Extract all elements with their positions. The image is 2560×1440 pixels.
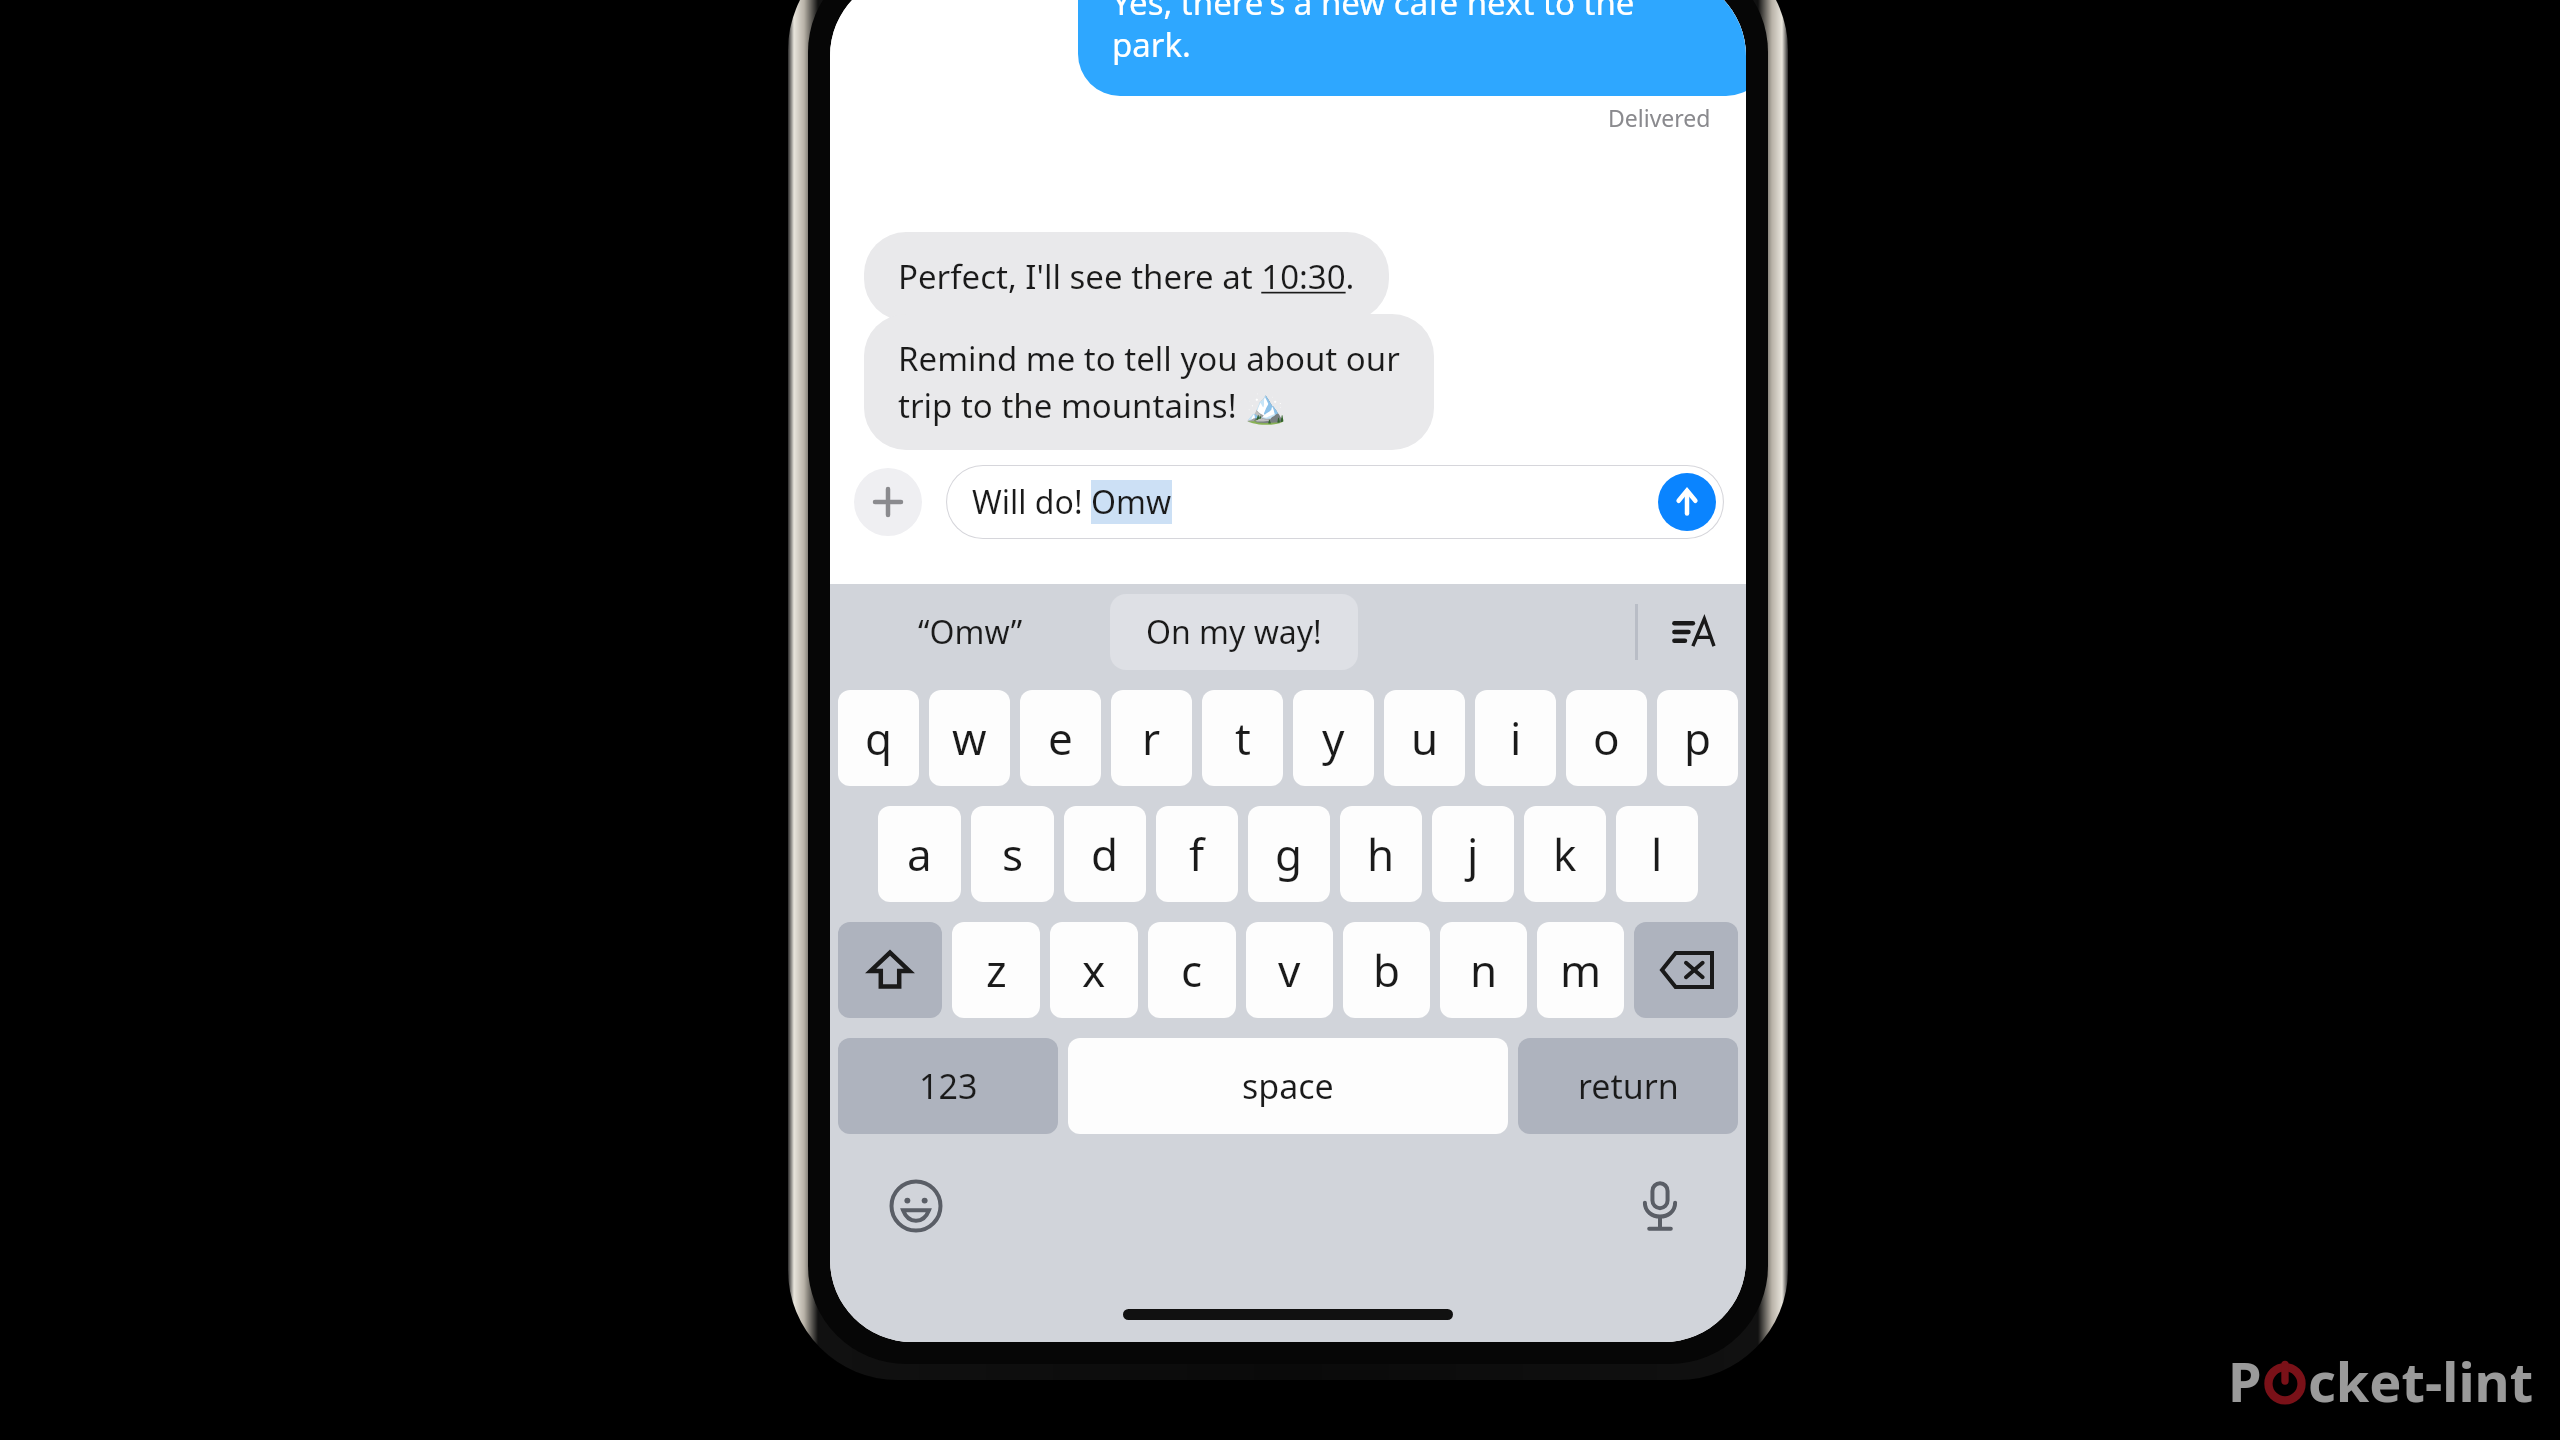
staticText: d (1091, 824, 1119, 884)
button[interactable]: Shift (838, 922, 942, 1018)
button[interactable]: g (1248, 806, 1330, 902)
button[interactable]: q (838, 690, 919, 786)
staticText: p (1684, 708, 1712, 768)
button[interactable]: j (1432, 806, 1514, 902)
button[interactable]: Yes, there's a new café next to the park… (1078, 0, 1746, 96)
button[interactable]: Backspace (1634, 922, 1738, 1018)
button[interactable]: return (1518, 1038, 1738, 1134)
button[interactable]: Add attachment (854, 468, 922, 536)
button[interactable]: Remind me to tell you about our trip to … (864, 314, 1434, 450)
button[interactable]: r (1111, 690, 1192, 786)
staticText: y (1322, 708, 1345, 768)
button[interactable]: Perfect, I'll see there at 10:30. (864, 232, 1389, 321)
staticText: Perfect, I'll see there at 10:30. (898, 254, 1355, 299)
button[interactable]: i (1475, 690, 1556, 786)
staticText: e (1048, 708, 1073, 768)
staticText: space (1242, 1063, 1334, 1109)
staticText: v (1278, 940, 1301, 1000)
staticText: u (1411, 708, 1439, 768)
staticText: f (1189, 824, 1205, 884)
staticText: w (952, 708, 987, 768)
button[interactable]: x (1050, 922, 1138, 1018)
staticText: r (1142, 708, 1161, 768)
button[interactable]: m (1537, 922, 1624, 1018)
button[interactable]: a (878, 806, 961, 902)
staticText: i (1510, 708, 1522, 768)
staticText: 123 (919, 1063, 978, 1109)
button[interactable]: space (1068, 1038, 1508, 1134)
button[interactable]: 123 (838, 1038, 1058, 1134)
staticText: Yes, there's a new café next to the park… (1112, 0, 1635, 67)
button[interactable]: p (1657, 690, 1738, 786)
button[interactable]: Emoji (880, 1170, 952, 1242)
staticText: g (1275, 824, 1303, 884)
button[interactable]: e (1020, 690, 1101, 786)
staticText: Omw (1091, 480, 1172, 524)
staticText: Delivered (1608, 102, 1711, 133)
button[interactable]: u (1384, 690, 1465, 786)
staticText: t (1235, 708, 1251, 768)
button[interactable]: k (1524, 806, 1606, 902)
button[interactable]: l (1616, 806, 1698, 902)
button[interactable]: z (952, 922, 1040, 1018)
button[interactable]: Formatting (1638, 584, 1746, 680)
staticText: s (1002, 824, 1024, 884)
button[interactable]: c (1148, 922, 1236, 1018)
button[interactable]: t (1202, 690, 1283, 786)
staticText: k (1553, 824, 1577, 884)
staticText: P (2228, 1344, 2262, 1418)
staticText: return (1578, 1063, 1679, 1109)
button[interactable]: w (929, 690, 1010, 786)
staticText: Remind me to tell you about our trip to … (898, 336, 1400, 428)
button[interactable]: o (1566, 690, 1647, 786)
staticText: On my way! (1146, 610, 1322, 654)
button[interactable]: s (971, 806, 1054, 902)
button[interactable]: d (1064, 806, 1146, 902)
staticText: j (1467, 824, 1479, 884)
staticText: l (1651, 824, 1663, 884)
button[interactable]: b (1343, 922, 1430, 1018)
staticText: n (1470, 940, 1498, 1000)
button[interactable]: Will do! (946, 465, 1724, 539)
staticText: cket-lint (2308, 1344, 2534, 1418)
staticText: x (1082, 940, 1106, 1000)
button[interactable]: h (1340, 806, 1422, 902)
staticText: b (1373, 940, 1401, 1000)
button[interactable]: f (1156, 806, 1238, 902)
staticText: q (865, 708, 893, 768)
staticText: Will do! (972, 480, 1091, 524)
staticText: c (1181, 940, 1203, 1000)
button[interactable]: Dictate (1624, 1170, 1696, 1242)
button[interactable]: n (1440, 922, 1527, 1018)
button[interactable]: y (1293, 690, 1374, 786)
staticText: m (1560, 940, 1602, 1000)
button[interactable]: v (1246, 922, 1333, 1018)
staticText: h (1367, 824, 1395, 884)
staticText: o (1593, 708, 1620, 768)
button[interactable]: “Omw” (830, 584, 1110, 680)
staticText: “Omw” (918, 610, 1023, 654)
button[interactable]: On my way! (1110, 594, 1358, 670)
button[interactable]: Send (1658, 473, 1716, 531)
staticText: a (907, 824, 932, 884)
staticText: z (986, 940, 1007, 1000)
